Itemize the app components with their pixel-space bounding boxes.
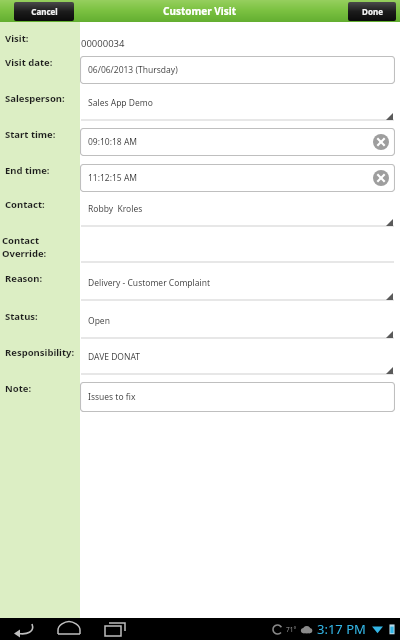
button[interactable]: Recent apps — [100, 618, 130, 640]
button[interactable]: DAVE DONAT — [80, 346, 395, 376]
staticText: End time: — [5, 164, 50, 177]
button[interactable]: Clear — [373, 170, 389, 186]
button[interactable]: Back — [8, 618, 38, 640]
staticText: Done — [362, 6, 383, 17]
staticText: Robby Kroles — [88, 203, 143, 215]
staticText: Sales App Demo — [88, 97, 153, 109]
staticText: Issues to fix — [88, 391, 136, 403]
staticText: 09:10:18 AM — [88, 136, 138, 148]
staticText: DAVE DONAT — [88, 351, 141, 363]
staticText: Visit: — [5, 32, 29, 45]
staticText: 71° — [286, 625, 297, 634]
button[interactable]: Cancel — [14, 2, 74, 21]
button[interactable]: Open — [80, 310, 395, 340]
button[interactable]: 06/06/2013 (Thursday) — [80, 56, 395, 84]
staticText: Contact Override: — [2, 234, 80, 260]
button[interactable]: Issues to fix — [80, 382, 395, 412]
staticText: Responsibility: — [5, 346, 75, 359]
staticText: 11:12:15 AM — [88, 172, 138, 184]
staticText: Visit date: — [5, 56, 53, 69]
staticText: Note: — [5, 382, 32, 395]
staticText: 06/06/2013 (Thursday) — [88, 64, 178, 76]
staticText: Status: — [5, 310, 38, 323]
staticText: Cancel — [31, 6, 58, 17]
button[interactable]: Robby Kroles — [80, 198, 395, 228]
staticText: Open — [88, 315, 110, 327]
button[interactable]: 11:12:15 AM — [80, 164, 395, 192]
staticText: 00000034 — [81, 37, 125, 50]
button[interactable]: Clear — [373, 134, 389, 150]
button[interactable] — [80, 234, 395, 264]
staticText: Delivery - Customer Complaint — [88, 277, 211, 289]
button[interactable]: Home — [54, 618, 84, 640]
staticText: Contact: — [5, 198, 45, 211]
staticText: Customer Visit — [163, 4, 237, 18]
button[interactable]: Sales App Demo — [80, 92, 395, 122]
button[interactable]: 09:10:18 AM — [80, 128, 395, 156]
staticText: Reason: — [5, 272, 43, 285]
staticText: 3:17 PM — [317, 620, 366, 638]
button[interactable]: Delivery - Customer Complaint — [80, 272, 395, 302]
button[interactable]: Done — [348, 2, 396, 21]
staticText: Start time: — [5, 128, 56, 141]
staticText: Salesperson: — [5, 92, 65, 105]
